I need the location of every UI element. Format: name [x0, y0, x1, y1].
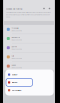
staticText: Sin accesorios — [11, 57, 22, 59]
button[interactable]: Personalizar — [6, 86, 32, 94]
button[interactable]: Duplicar — [6, 71, 32, 78]
staticText: Llegar — [11, 64, 16, 66]
staticText: Salir — [11, 54, 14, 57]
button[interactable]: Salir — [4, 52, 54, 61]
staticText: Sin accesorios — [11, 48, 22, 50]
button[interactable]: Eliminar — [6, 78, 32, 86]
staticText: Modos de rutina — [6, 7, 22, 10]
staticText: Dormir — [11, 45, 17, 48]
staticText: Los modos de rutina te permiten activar … — [6, 11, 51, 18]
staticText: Personalizar — [12, 89, 22, 91]
staticText: Sin accesorios — [11, 30, 22, 32]
staticText: Sin accesorios — [11, 39, 22, 41]
button[interactable]: Cerrar — [48, 7, 51, 10]
staticText: Duplicar — [12, 73, 18, 76]
button[interactable]: Despertar — [4, 34, 54, 43]
staticText: Sin accesorios — [11, 67, 22, 69]
staticText: Eliminar — [12, 81, 18, 84]
button[interactable]: Llegar — [4, 62, 54, 70]
button[interactable]: Tranquilo — [4, 25, 54, 34]
staticText: Despertar — [11, 36, 20, 38]
staticText: Tranquilo — [11, 27, 18, 29]
button[interactable]: Buscar — [42, 7, 45, 10]
button[interactable]: Dormir — [4, 43, 54, 52]
